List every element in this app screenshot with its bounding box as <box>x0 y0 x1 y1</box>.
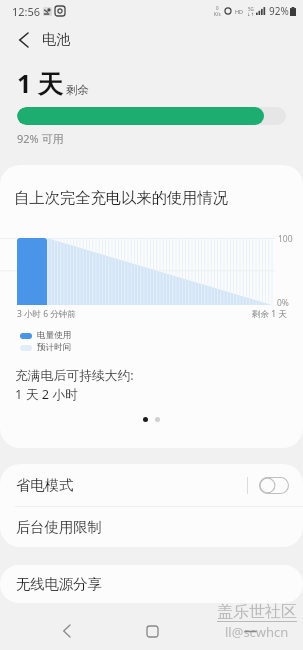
staticText: 92% 可用 <box>17 131 64 146</box>
staticText: K/s <box>214 11 221 17</box>
staticText: 预计时间 <box>37 342 72 353</box>
staticText: 92% <box>269 4 289 18</box>
staticText: 省电模式 <box>16 476 74 494</box>
staticText: 盖乐世社区 <box>217 602 297 622</box>
button[interactable]: Back <box>8 25 38 55</box>
button[interactable]: 无线电源分享 <box>0 565 303 603</box>
staticText: 无线电源分享 <box>16 575 102 593</box>
staticText: 电池 <box>42 31 70 49</box>
staticText: 剩余 1 天 <box>252 308 287 320</box>
button[interactable]: Home <box>137 616 167 646</box>
staticText: 电量使用 <box>37 330 72 341</box>
staticText: 3 小时 6 分钟前 <box>17 308 76 320</box>
staticText: ↓↑ <box>247 12 255 17</box>
staticText: 剩余 <box>66 83 89 97</box>
button[interactable]: 后台使用限制 <box>0 507 303 547</box>
staticText: 12:56 <box>12 4 41 19</box>
staticText: 0% <box>277 297 289 309</box>
staticText: 自上次完全充电以来的使用情况 <box>14 188 229 207</box>
staticText: 0 <box>216 5 219 11</box>
staticText: 后台使用限制 <box>16 518 102 536</box>
staticText: 1 天 2 小时 <box>15 385 79 402</box>
staticText: 100 <box>278 233 293 245</box>
button[interactable]: 省电模式 <box>0 464 303 506</box>
staticText: 1 天 <box>17 66 63 100</box>
button[interactable]: Back <box>51 616 81 646</box>
staticText: 充满电后可持续大约: <box>15 366 134 383</box>
staticText: ll@scwhcn <box>225 623 289 641</box>
staticText: HD <box>235 8 244 15</box>
button[interactable]: Recents <box>235 616 265 646</box>
staticText: 5G <box>248 6 254 12</box>
